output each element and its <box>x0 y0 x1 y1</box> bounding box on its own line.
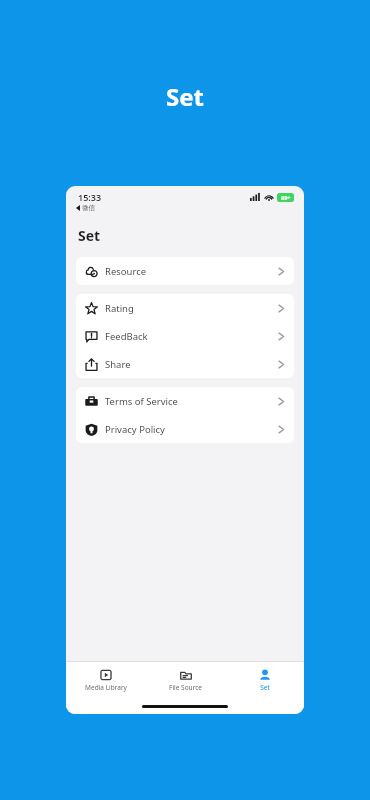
staticText: Media Library <box>85 683 127 692</box>
staticText: 15:33 <box>78 191 102 203</box>
staticText: Share <box>105 358 131 371</box>
button[interactable]: Rating <box>76 294 294 322</box>
staticText: Resource <box>105 265 147 278</box>
staticText: FeedBack <box>105 330 148 343</box>
button[interactable]: File Source <box>146 662 225 698</box>
button[interactable]: Set <box>225 662 304 698</box>
staticText: Set <box>260 683 270 692</box>
button[interactable]: Media Library <box>66 662 146 698</box>
staticText: Set <box>166 80 204 113</box>
button[interactable]: Resource <box>76 257 294 285</box>
staticText: Rating <box>105 302 134 315</box>
staticText: File Source <box>169 683 202 692</box>
button[interactable]: Terms of Service <box>76 387 294 415</box>
button[interactable]: Share <box>76 350 294 378</box>
staticText: Terms of Service <box>105 395 178 408</box>
staticText: Privacy Policy <box>105 423 165 436</box>
staticText: Set <box>78 226 101 245</box>
button[interactable]: FeedBack <box>76 322 294 350</box>
staticText: 89+ <box>281 194 291 201</box>
staticText: 微信 <box>82 204 95 212</box>
button[interactable]: Privacy Policy <box>76 415 294 443</box>
